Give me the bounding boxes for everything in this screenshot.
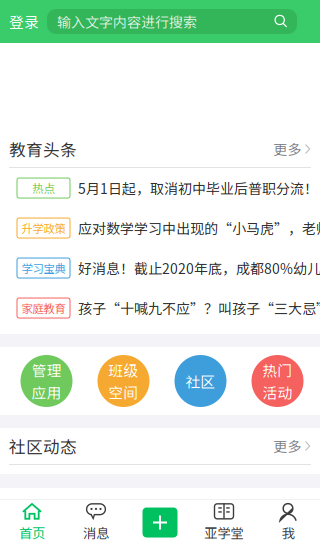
- staticText: 亚学堂: [204, 523, 243, 542]
- staticText: 更多: [273, 139, 301, 159]
- button[interactable]: 亚学堂: [192, 500, 256, 545]
- staticText: 热门: [262, 359, 292, 380]
- button[interactable]: 登录: [9, 11, 39, 32]
- button[interactable]: 学习宝典: [0, 248, 320, 288]
- button[interactable]: 热门: [251, 355, 303, 407]
- staticText: 消息: [83, 523, 109, 542]
- staticText: 热点: [32, 180, 54, 196]
- staticText: 活动: [262, 381, 292, 403]
- staticText: 家庭教育: [21, 300, 65, 316]
- button[interactable]: 升学政策: [0, 208, 320, 248]
- staticText: 5月1日起，取消初中毕业后普职分流！: [78, 178, 318, 198]
- staticText: 班级: [108, 359, 138, 380]
- button[interactable]: 班级: [97, 355, 149, 407]
- staticText: 我: [281, 523, 294, 542]
- button[interactable]: 更多: [273, 131, 311, 167]
- staticText: 管理: [31, 359, 61, 380]
- staticText: 教育头条: [9, 137, 77, 161]
- staticText: 孩子“十喊九不应”？叫孩子“三大忌”，家长切记: [78, 298, 320, 318]
- button[interactable]: 我: [256, 500, 320, 545]
- staticText: 更多: [273, 436, 301, 456]
- button[interactable]: 管理: [20, 355, 72, 407]
- staticText: 空间: [108, 381, 138, 403]
- staticText: 升学政策: [21, 220, 65, 236]
- button[interactable]: 社区: [174, 355, 226, 407]
- staticText: 好消息！截止2020年底，成都80%幼儿园将普惠: [78, 258, 320, 278]
- staticText: 社区动态: [9, 434, 77, 458]
- staticText: 首页: [19, 523, 45, 542]
- staticText: 输入文字内容进行搜索: [57, 11, 197, 32]
- staticText: 应对数学学习中出现的“小马虎”，老师建议这样做: [78, 218, 320, 238]
- staticText: 社区: [185, 370, 215, 392]
- button[interactable]: 家庭教育: [0, 288, 320, 328]
- button[interactable]: 新建: [128, 500, 192, 545]
- button[interactable]: 消息: [64, 500, 128, 545]
- staticText: 应用: [31, 381, 61, 403]
- staticText: 登录: [9, 11, 39, 32]
- button[interactable]: 更多: [273, 428, 311, 464]
- staticText: 学习宝典: [21, 260, 65, 276]
- button[interactable]: 热点: [0, 168, 320, 208]
- button[interactable]: 首页: [0, 500, 64, 545]
